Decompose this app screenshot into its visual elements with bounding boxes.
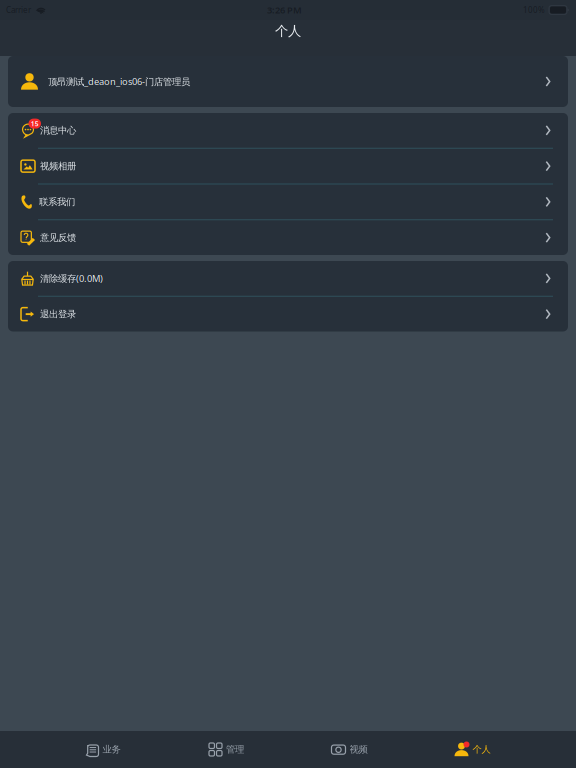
staticText: 联系我们 (39, 196, 75, 208)
staticText: 100% (523, 5, 545, 15)
staticText: 消息中心 (40, 125, 76, 136)
staticText: 个人 (472, 744, 490, 755)
staticText: 个人 (275, 23, 301, 39)
button[interactable]: 管理 (165, 731, 288, 768)
staticText: Carrier (6, 5, 31, 15)
staticText: 意见反馈 (40, 232, 76, 243)
button[interactable]: 视频相册 (8, 149, 568, 184)
button[interactable]: 意见反馈 (8, 220, 568, 255)
staticText: 视频 (349, 744, 367, 755)
button[interactable]: 15 (8, 113, 568, 148)
button[interactable]: 联系我们 (8, 184, 568, 219)
button[interactable]: 视频 (288, 731, 411, 768)
staticText: 退出登录 (40, 308, 76, 320)
button[interactable]: 顶昂测试_deaon_ios06-门店管理员 (8, 56, 568, 107)
staticText: 业务 (102, 744, 120, 755)
staticText: 清除缓存(0.0M) (40, 272, 103, 285)
staticText: 3:26 PM (267, 4, 302, 16)
staticText: 顶昂测试_deaon_ios06-门店管理员 (48, 75, 190, 88)
staticText: 15 (31, 119, 39, 128)
button[interactable]: 业务 (42, 731, 165, 768)
button[interactable]: 个人 (411, 731, 534, 768)
staticText: 管理 (226, 744, 244, 755)
button[interactable]: 退出登录 (8, 297, 568, 332)
staticText: 视频相册 (40, 160, 76, 172)
button[interactable]: 清除缓存(0.0M) (8, 261, 568, 296)
